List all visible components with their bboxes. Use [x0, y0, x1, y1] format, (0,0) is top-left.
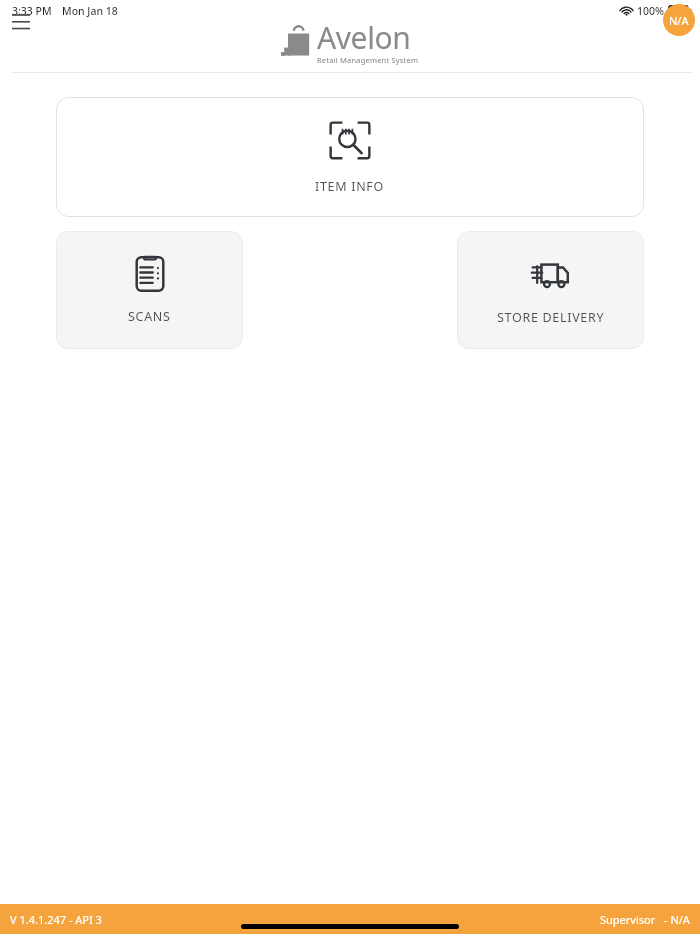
button[interactable]: ITEM INFO	[56, 97, 644, 217]
staticText: V 1.4.1.247 - API 3	[10, 912, 102, 927]
button[interactable]: SCANS	[56, 231, 243, 349]
staticText: Mon Jan 18	[62, 4, 118, 18]
staticText: 100%	[637, 4, 664, 18]
staticText: 3:33 PM	[12, 4, 52, 18]
staticText: Supervisor	[600, 912, 656, 927]
button[interactable]: Menu	[6, 8, 40, 34]
button[interactable]: Account	[663, 4, 695, 36]
staticText: Avelon	[317, 17, 411, 58]
button[interactable]: STORE DELIVERY	[457, 231, 644, 349]
staticText: Retail Management System	[317, 55, 419, 65]
staticText: ITEM INFO	[315, 178, 385, 195]
staticText: N/A	[669, 13, 689, 28]
staticText: SCANS	[128, 308, 171, 325]
staticText: STORE DELIVERY	[497, 309, 605, 326]
staticText: - N/A	[664, 912, 690, 927]
